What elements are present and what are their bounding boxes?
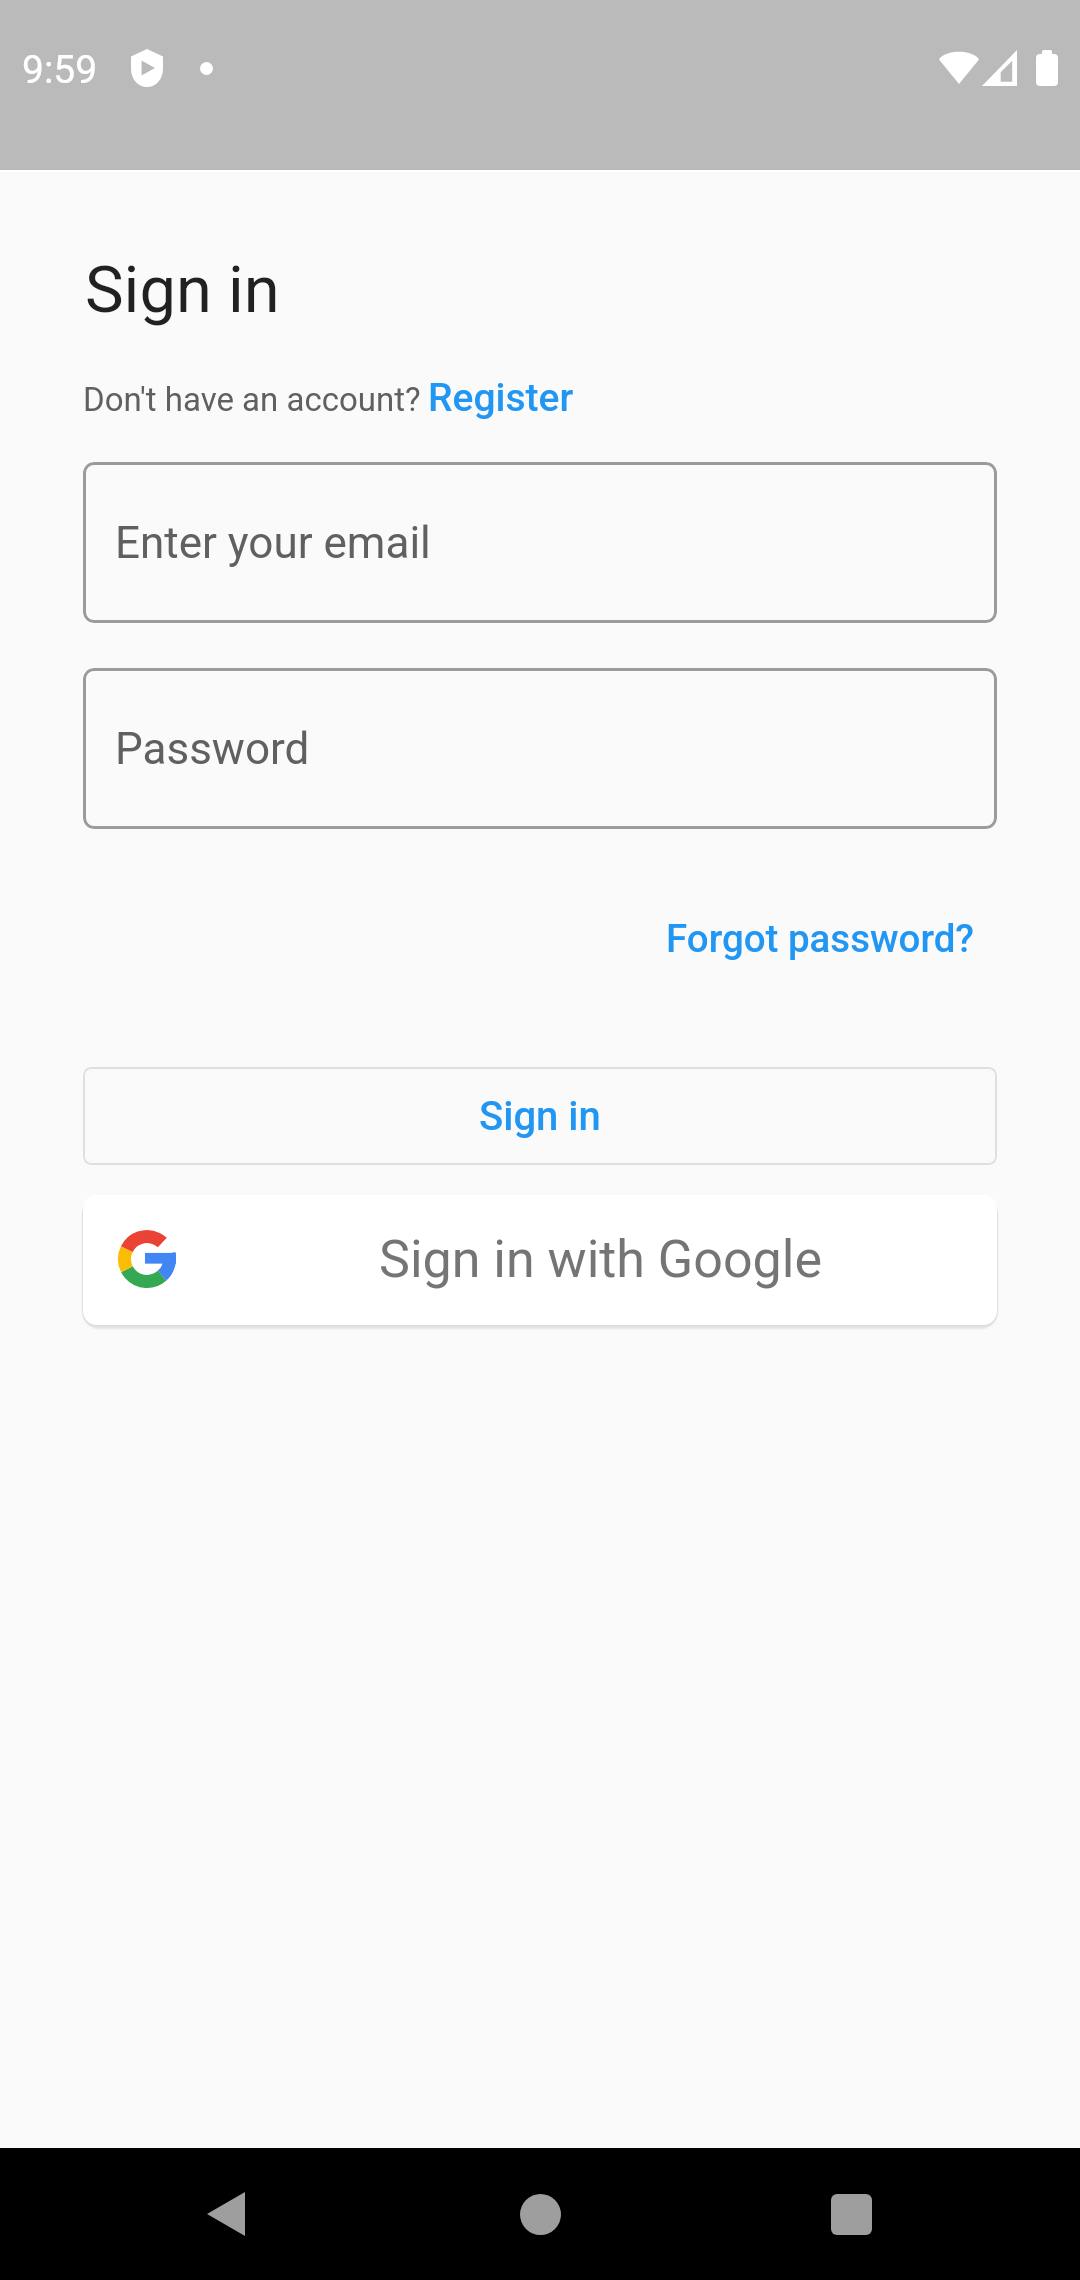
staticText: Forgot password? [666, 916, 975, 961]
button[interactable]: Forgot password? [642, 892, 999, 985]
button[interactable]: Home [465, 2148, 615, 2280]
button[interactable]: Sign in with Google [83, 1195, 997, 1325]
staticText: Register [428, 375, 574, 421]
staticText: Password [115, 723, 310, 775]
button[interactable]: Enter your email [83, 462, 997, 623]
staticText: Don't have an account? [83, 380, 421, 419]
button[interactable]: Sign in [83, 1067, 997, 1165]
staticText: Enter your email [115, 517, 431, 569]
staticText: Sign in [479, 1093, 601, 1140]
button[interactable]: Recent apps [776, 2148, 926, 2280]
staticText: Sign in with Google [379, 1229, 823, 1290]
staticText: Sign in [85, 252, 280, 328]
button[interactable]: Password [83, 668, 997, 829]
staticText: 9:59 [22, 47, 98, 93]
button[interactable]: Register [421, 375, 588, 421]
button[interactable]: Back [151, 2148, 301, 2280]
